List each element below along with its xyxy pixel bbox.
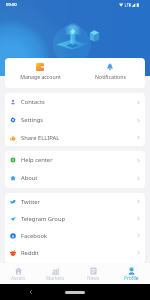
staticText: Settings (21, 116, 44, 124)
staticText: Help center (21, 156, 53, 164)
staticText: Profile (124, 275, 139, 282)
button[interactable]: Reddit (5, 244, 145, 261)
button[interactable]: About (5, 169, 145, 187)
staticText: Contacts (21, 98, 45, 106)
button[interactable]: Manage account (5, 58, 75, 80)
staticText: About (21, 174, 38, 182)
staticText: Telegram Group (21, 215, 66, 223)
button[interactable]: Notifications (75, 58, 145, 80)
button[interactable]: Help center (5, 151, 145, 169)
staticText: 09:00 (6, 2, 17, 8)
staticText: Markets (46, 275, 65, 282)
button[interactable]: Facebook (5, 227, 145, 244)
other: Back (28, 289, 34, 295)
button[interactable]: Telegram Group (5, 210, 145, 227)
button[interactable]: Share ELLIPAL (5, 129, 145, 146)
staticText: Twitter (21, 198, 41, 206)
staticText: Share ELLIPAL (21, 134, 60, 142)
button[interactable]: Markets (37, 265, 74, 282)
staticText: Assets (11, 275, 26, 282)
staticText: Manage account (20, 73, 61, 80)
button[interactable]: Assets (0, 265, 37, 282)
other: Home (65, 291, 85, 294)
staticText: News (87, 275, 100, 282)
button[interactable]: Twitter (5, 193, 145, 210)
button[interactable]: News (74, 265, 112, 282)
button[interactable]: Contacts (5, 93, 145, 111)
staticText: Notifications (95, 73, 126, 80)
staticText: Reddit (21, 249, 39, 257)
button[interactable]: Profile (112, 265, 150, 282)
button[interactable]: Settings (5, 111, 145, 129)
staticText: Facebook (21, 232, 47, 240)
